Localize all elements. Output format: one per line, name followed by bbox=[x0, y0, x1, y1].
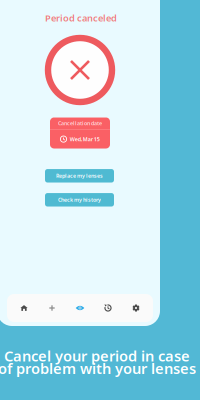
staticText: Cancel your period in case bbox=[4, 346, 190, 366]
button[interactable]: Lenses bbox=[66, 295, 94, 321]
staticText: Cancellation date bbox=[58, 120, 102, 127]
staticText: Replace my lenses bbox=[56, 172, 103, 179]
staticText: Period canceled bbox=[45, 12, 117, 24]
button[interactable]: History bbox=[94, 295, 122, 321]
button[interactable]: Check my history bbox=[45, 193, 114, 207]
button[interactable]: Add bbox=[38, 295, 66, 321]
staticText: Check my history bbox=[58, 196, 101, 203]
staticText: of problem with your lenses bbox=[0, 358, 196, 378]
button[interactable]: Replace my lenses bbox=[45, 169, 114, 183]
staticText: Wed, Mar 15 bbox=[70, 136, 100, 143]
button[interactable]: Settings bbox=[122, 295, 150, 321]
button[interactable]: Home bbox=[10, 295, 38, 321]
